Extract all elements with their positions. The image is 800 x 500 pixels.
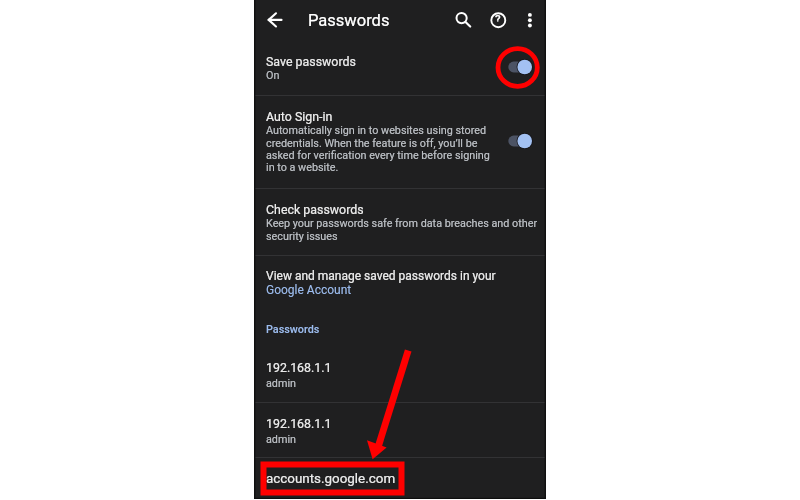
staticText: Automatically sign in to websites using … <box>266 124 496 173</box>
staticText: 192.168.1.1 <box>266 416 332 431</box>
staticText: accounts.google.com <box>266 471 396 487</box>
button[interactable]: Check passwords <box>254 189 546 255</box>
button[interactable]: accounts.google.com <box>254 458 546 500</box>
staticText: View and manage saved passwords in your <box>266 269 496 283</box>
button[interactable]: 192.168.1.1 <box>254 404 546 458</box>
staticText: Passwords <box>308 11 390 30</box>
staticText: Google Account <box>266 283 352 297</box>
staticText: Save passwords <box>266 54 356 69</box>
button[interactable]: Toggle <box>504 131 538 151</box>
staticText: admin <box>266 377 297 390</box>
button[interactable]: Auto Sign-in <box>254 96 546 188</box>
button[interactable]: 192.168.1.1 <box>254 348 546 402</box>
button[interactable]: Help <box>484 6 512 34</box>
button[interactable]: Toggle <box>504 57 538 77</box>
staticText: Auto Sign-in <box>266 109 333 124</box>
button[interactable]: View and manage saved passwords in your <box>254 256 546 306</box>
staticText: Keep your passwords safe from data breac… <box>266 217 538 242</box>
staticText: admin <box>266 433 297 446</box>
button[interactable]: Back <box>262 6 290 34</box>
button[interactable]: Search <box>448 6 476 34</box>
staticText: Check passwords <box>266 202 364 217</box>
button[interactable]: More options <box>516 6 544 34</box>
staticText: Passwords <box>266 323 320 336</box>
staticText: ? <box>495 12 501 22</box>
staticText: 192.168.1.1 <box>266 360 332 375</box>
staticText: On <box>266 69 280 82</box>
button[interactable]: Save passwords <box>254 41 546 95</box>
